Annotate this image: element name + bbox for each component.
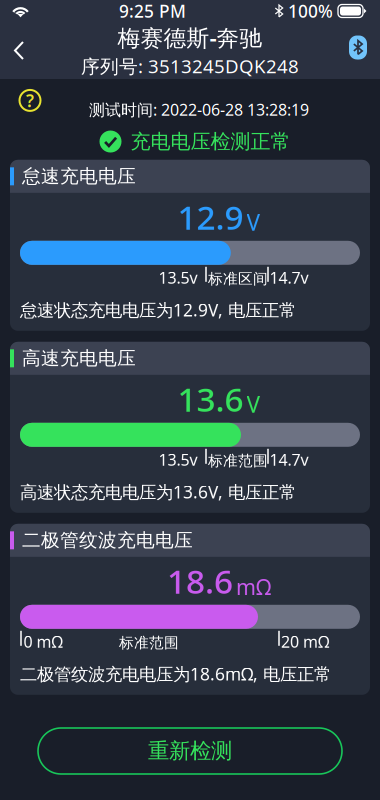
staticText: 18.6 [167,559,233,603]
staticText: 梅赛德斯-奔驰 [117,23,262,53]
staticText: 二极管纹波充电电压 [22,529,193,552]
staticText: V [246,207,260,237]
staticText: 13.5v [158,449,197,470]
staticText: ? [26,89,34,112]
staticText: mΩ [236,573,271,601]
staticText: 标准范围 [208,452,268,470]
button[interactable]: Bluetooth [341,33,380,67]
staticText: 14.7v [269,267,308,288]
staticText: 13.5v [158,267,197,288]
staticText: 标准区间 [208,270,268,288]
staticText: 怠速状态充电电压为12.9V, 电压正常 [20,298,296,321]
staticText: V [246,389,260,419]
staticText: 20 mΩ [281,631,329,652]
staticText: 13.6 [177,377,243,421]
button[interactable]: 重新检测 [38,728,342,774]
staticText: 12.9 [177,195,243,239]
staticText: 充电电压检测正常 [130,129,290,154]
staticText: 0 mΩ [23,631,62,652]
staticText: 9:25 PM [119,0,186,22]
staticText: 序列号: 3513245DQK248 [81,54,299,78]
staticText: 14.7v [269,449,308,470]
staticText: 二极管纹波充电电压为18.6mΩ, 电压正常 [20,662,331,685]
button[interactable]: Back [0,32,38,69]
staticText: 高速充电电压 [22,347,136,370]
staticText: 重新检测 [148,738,232,764]
staticText: 标准范围 [119,634,179,652]
staticText: 高速状态充电电压为13.6V, 电压正常 [20,480,296,503]
button[interactable]: Help [13,83,47,117]
staticText: 怠速充电电压 [22,165,136,188]
staticText: 100% [288,0,333,22]
staticText: 测试时间: 2022-06-28 13:28:19 [89,99,309,120]
